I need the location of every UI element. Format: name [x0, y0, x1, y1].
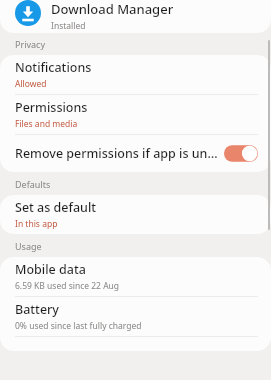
staticText: Set as default	[15, 199, 97, 216]
staticText: Allowed	[15, 78, 47, 90]
staticText: Battery	[15, 301, 59, 318]
button[interactable]: Download Manager	[0, 0, 271, 33]
button[interactable]: Notifications	[0, 55, 271, 94]
staticText: Installed	[51, 20, 86, 32]
staticText: Download Manager	[51, 0, 174, 18]
staticText: Usage	[15, 240, 42, 252]
staticText: Files and media	[15, 118, 78, 130]
button[interactable]: Permissions	[0, 95, 271, 134]
staticText: 6.59 KB used since 22 Aug	[15, 280, 120, 292]
button[interactable]: Set as default	[0, 195, 271, 234]
staticText: Defaults	[15, 178, 51, 190]
button[interactable]: Remove permissions if app is unused	[0, 135, 271, 172]
staticText: 0% used since last fully charged	[15, 320, 142, 332]
button[interactable]: Remove permissions if app is unused togg…	[224, 144, 258, 163]
button[interactable]: Battery	[0, 297, 271, 336]
staticText: In this app	[15, 218, 58, 230]
staticText: Permissions	[15, 99, 88, 116]
staticText: Privacy	[15, 38, 46, 50]
staticText: Mobile data	[15, 261, 86, 278]
staticText: Remove permissions if app is unused	[15, 145, 224, 162]
button[interactable]: Mobile data	[0, 257, 271, 296]
staticText: Notifications	[15, 59, 92, 76]
